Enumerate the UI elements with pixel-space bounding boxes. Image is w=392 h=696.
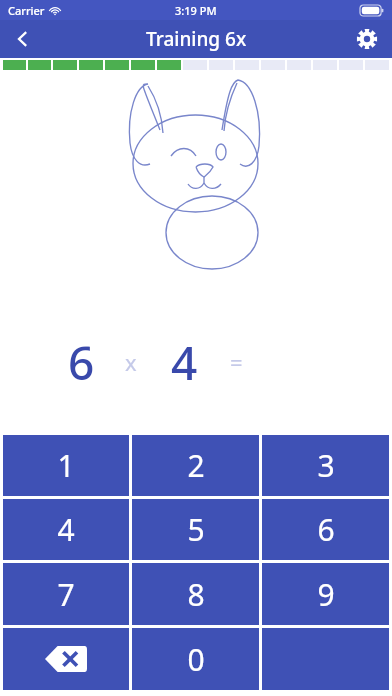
- button[interactable]: 3: [262, 435, 389, 496]
- staticText: 2: [187, 445, 205, 486]
- button[interactable]: 1: [3, 435, 129, 496]
- staticText: 7: [57, 574, 75, 615]
- button[interactable]: Back: [0, 20, 46, 58]
- staticText: =: [230, 347, 243, 377]
- staticText: 0: [187, 639, 205, 680]
- button[interactable]: 6: [262, 499, 389, 560]
- button[interactable]: 4: [3, 499, 129, 560]
- staticText: 8: [187, 574, 205, 615]
- button[interactable]: 0: [132, 628, 259, 690]
- button[interactable]: 7: [3, 563, 129, 625]
- staticText: 3:19 PM: [175, 3, 217, 18]
- button[interactable]: Settings: [342, 20, 392, 58]
- button[interactable]: 5: [132, 499, 259, 560]
- staticText: Carrier: [8, 3, 45, 18]
- staticText: 9: [317, 574, 335, 615]
- staticText: x: [125, 347, 137, 377]
- button[interactable]: Backspace: [3, 628, 129, 690]
- staticText: 4: [57, 509, 75, 550]
- button[interactable]: 9: [262, 563, 389, 625]
- staticText: 5: [187, 509, 205, 550]
- staticText: Training 6x: [146, 26, 247, 52]
- button[interactable]: 8: [132, 563, 259, 625]
- staticText: 6: [68, 331, 95, 394]
- button[interactable]: 2: [132, 435, 259, 496]
- staticText: 1: [57, 445, 75, 486]
- staticText: 6: [317, 509, 335, 550]
- staticText: 3: [317, 445, 335, 486]
- staticText: 4: [171, 331, 198, 394]
